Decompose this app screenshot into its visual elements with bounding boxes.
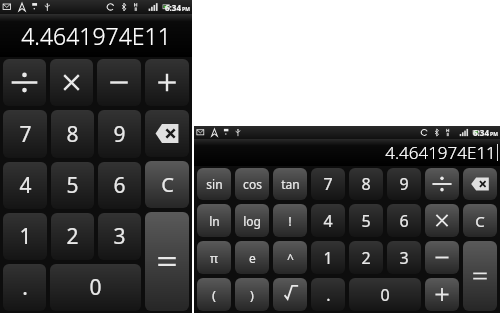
staticText: 6 <box>113 171 126 200</box>
button[interactable]: Divide <box>3 59 46 106</box>
button[interactable]: 5 <box>349 204 383 237</box>
button[interactable]: . <box>311 278 345 311</box>
staticText: ( <box>212 286 216 304</box>
button[interactable]: ^ <box>273 241 307 274</box>
staticText: 9 <box>399 173 409 195</box>
staticText: 6:34 <box>165 2 181 13</box>
staticText: 1 <box>323 247 333 269</box>
button[interactable]: Backspace <box>145 110 189 157</box>
button[interactable]: 7 <box>3 110 47 158</box>
button[interactable]: sin <box>197 168 231 200</box>
button[interactable]: cos <box>235 168 269 200</box>
button[interactable]: Backspace <box>463 168 497 200</box>
button[interactable]: ln <box>197 204 231 237</box>
button[interactable]: 0 <box>349 278 421 311</box>
staticText: ln <box>209 213 220 229</box>
staticText: 4.4641974E11 <box>21 20 171 51</box>
button[interactable]: Multiply <box>425 204 459 237</box>
staticText: 3 <box>113 222 126 251</box>
staticText: cos <box>243 176 262 192</box>
button[interactable]: 3 <box>387 241 421 274</box>
staticText: ^ <box>287 250 294 266</box>
staticText: sin <box>206 176 223 192</box>
staticText: 0 <box>380 284 390 306</box>
staticText: 4 <box>19 171 32 200</box>
button[interactable]: 1 <box>3 213 47 260</box>
staticText: 6 <box>399 210 409 232</box>
button[interactable]: 8 <box>51 110 94 158</box>
staticText: . <box>22 273 28 302</box>
staticText: 6:34 <box>473 127 489 138</box>
staticText: 2 <box>66 222 79 251</box>
staticText: 9 <box>113 120 126 149</box>
staticText: PM <box>182 6 190 13</box>
button[interactable]: 4 <box>3 162 47 209</box>
staticText: 0 <box>89 273 102 302</box>
staticText: 7 <box>19 120 32 149</box>
button[interactable]: Plus <box>425 278 459 311</box>
staticText: 5 <box>66 171 79 200</box>
button[interactable]: ! <box>273 204 307 237</box>
button[interactable]: 4 <box>311 204 345 237</box>
button[interactable]: 0 <box>50 264 141 311</box>
button[interactable]: 5 <box>51 162 94 209</box>
button[interactable]: e <box>235 241 269 274</box>
button[interactable]: 6 <box>98 162 141 209</box>
button[interactable]: 8 <box>349 168 383 200</box>
button[interactable]: 2 <box>51 213 94 260</box>
staticText: 2 <box>361 247 371 269</box>
button[interactable]: 7 <box>311 168 345 200</box>
button[interactable]: 1 <box>311 241 345 274</box>
staticText: 8 <box>361 173 371 195</box>
button[interactable]: ( <box>197 278 231 311</box>
staticText: ! <box>288 212 292 230</box>
button[interactable]: Divide <box>425 168 459 200</box>
staticText: C <box>475 211 485 231</box>
button[interactable]: Equals <box>145 212 189 311</box>
button[interactable]: π <box>197 241 231 274</box>
staticText: tan <box>281 176 300 192</box>
button[interactable]: 6 <box>387 204 421 237</box>
staticText: 8 <box>66 120 79 149</box>
staticText: π <box>210 250 218 266</box>
button[interactable]: 3 <box>98 213 141 260</box>
button[interactable]: tan <box>273 168 307 200</box>
button[interactable]: Square root <box>273 278 307 311</box>
button[interactable]: Minus <box>97 59 141 106</box>
button[interactable]: Multiply <box>50 59 93 106</box>
button[interactable]: C <box>463 204 497 237</box>
button[interactable]: ) <box>235 278 269 311</box>
staticText: 3 <box>399 247 409 269</box>
button[interactable]: 9 <box>387 168 421 200</box>
button[interactable]: C <box>145 161 189 208</box>
staticText: log <box>243 213 261 229</box>
staticText: 5 <box>361 210 371 232</box>
button[interactable]: log <box>235 204 269 237</box>
button[interactable]: Minus <box>425 241 459 274</box>
staticText: . <box>326 284 331 306</box>
staticText: 1 <box>19 222 32 251</box>
button[interactable]: 2 <box>349 241 383 274</box>
staticText: 4 <box>323 210 333 232</box>
staticText: 7 <box>323 173 333 195</box>
staticText: 4.4641974E11 <box>385 141 496 164</box>
staticText: PM <box>490 131 498 138</box>
button[interactable]: 9 <box>98 110 141 158</box>
staticText: ) <box>250 286 254 304</box>
staticText: e <box>249 250 256 266</box>
staticText: C <box>161 171 174 198</box>
button[interactable]: . <box>3 264 46 311</box>
button[interactable]: Equals <box>463 241 497 311</box>
button[interactable]: Plus <box>145 59 189 106</box>
